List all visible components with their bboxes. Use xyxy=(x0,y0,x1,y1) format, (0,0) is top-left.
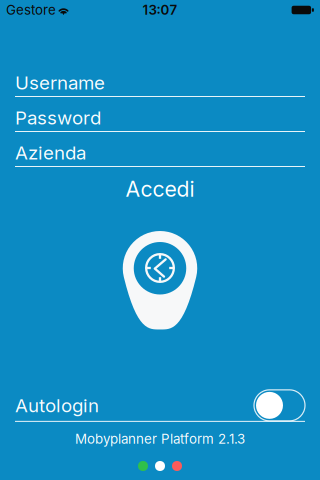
staticText: 13:07 xyxy=(142,2,177,18)
staticText: Username xyxy=(15,71,105,94)
button[interactable]: Username xyxy=(15,62,305,97)
button[interactable]: Autologin xyxy=(0,390,320,422)
button[interactable]: Azienda xyxy=(15,132,305,167)
button[interactable]: Password xyxy=(15,97,305,132)
staticText: Autologin xyxy=(15,394,99,417)
staticText: Mobyplanner Platform 2.1.3 xyxy=(75,431,245,447)
staticText: Gestore xyxy=(6,2,56,18)
staticText: Azienda xyxy=(15,141,86,164)
staticText: Accedi xyxy=(125,176,194,202)
button[interactable]: Accedi xyxy=(0,167,320,211)
staticText: Password xyxy=(15,106,101,129)
